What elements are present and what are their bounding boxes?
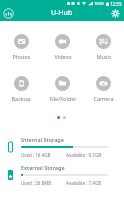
staticText: Photos bbox=[12, 53, 31, 60]
staticText: External Storage bbox=[21, 164, 65, 171]
button[interactable]: Photos bbox=[0, 34, 42, 60]
staticText: 12:55 bbox=[110, 1, 122, 7]
staticText: Available : 9.7GB bbox=[66, 152, 102, 158]
staticText: Videos bbox=[54, 53, 72, 60]
staticText: 100% bbox=[94, 1, 105, 6]
staticText: Backup bbox=[11, 95, 31, 102]
button[interactable]: Videos bbox=[42, 34, 83, 60]
button[interactable]: Settings bbox=[111, 9, 120, 18]
button[interactable]: Music bbox=[83, 34, 124, 60]
staticText: U-Hub bbox=[51, 8, 73, 18]
staticText: Used : 26.8MB bbox=[21, 180, 52, 186]
button[interactable]: External Storage bbox=[0, 164, 124, 186]
button[interactable]: Camera bbox=[83, 76, 124, 102]
button[interactable]: Backup bbox=[0, 76, 42, 102]
staticText: Camera bbox=[93, 95, 114, 102]
button[interactable]: Internal Storage bbox=[0, 136, 124, 158]
staticText: Available : 7.4GB bbox=[66, 180, 102, 186]
staticText: Used : 16.4GB bbox=[21, 152, 51, 158]
staticText: Music bbox=[96, 53, 112, 60]
button[interactable]: File/Folder bbox=[42, 76, 83, 102]
button[interactable]: Profile bbox=[3, 8, 14, 19]
staticText: Internal Storage bbox=[21, 136, 64, 143]
staticText: File/Folder bbox=[49, 95, 77, 102]
